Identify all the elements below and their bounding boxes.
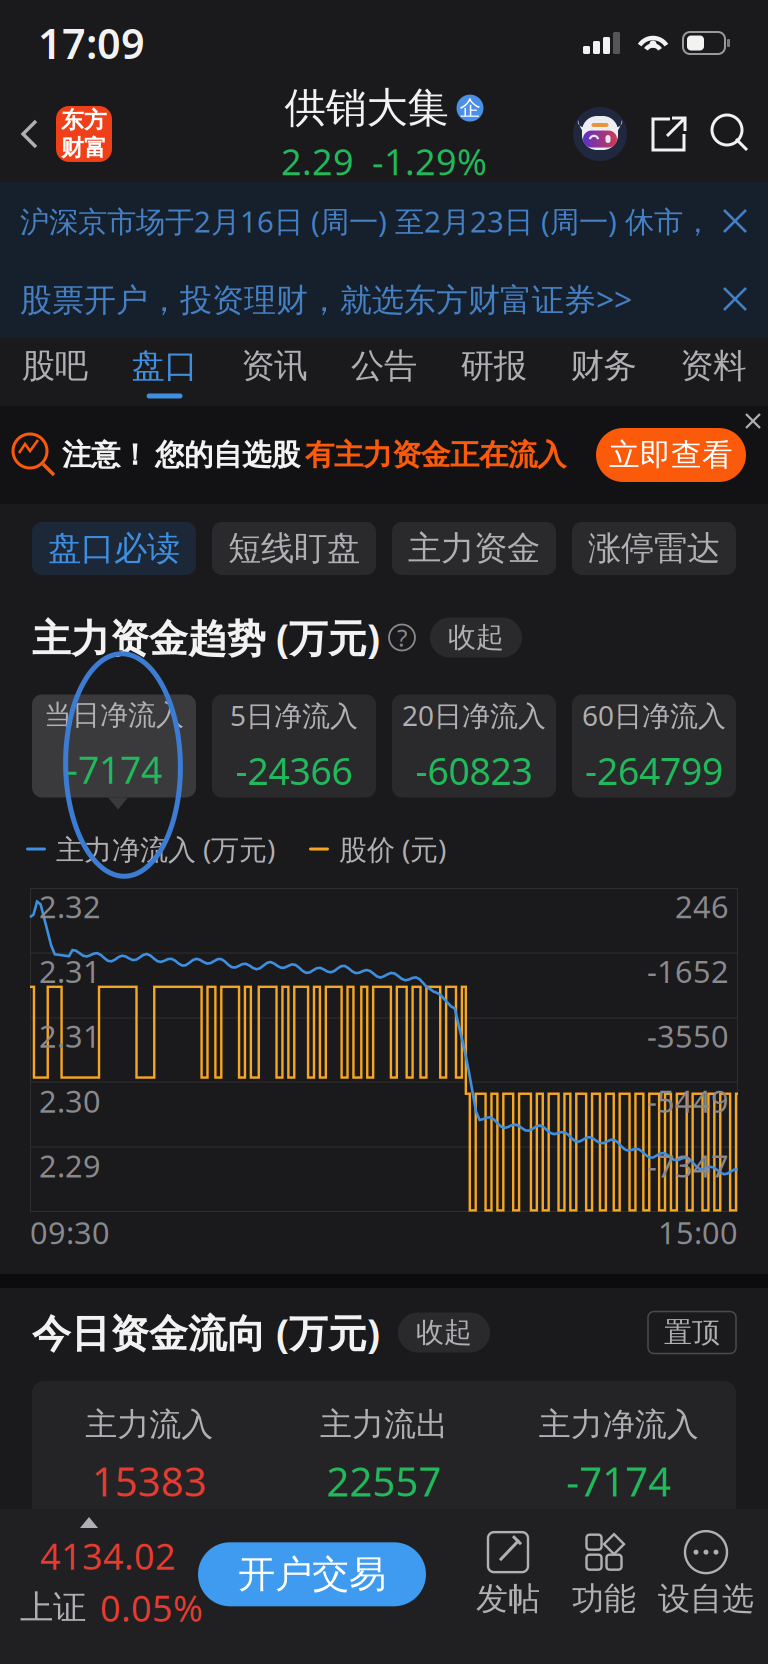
- staticText: -1.29%: [372, 137, 487, 185]
- button[interactable]: 涨停雷达: [572, 522, 736, 575]
- staticText: 收起: [416, 1315, 472, 1350]
- button[interactable]: Back: [0, 96, 112, 172]
- staticText: 股价 (元): [339, 830, 446, 868]
- staticText: 2.31: [39, 951, 101, 991]
- staticText: 股吧: [22, 345, 88, 386]
- staticText: 公告: [351, 345, 417, 386]
- staticText: 设自选: [658, 1579, 754, 1618]
- staticText: 15383: [92, 1454, 207, 1507]
- staticText: 60日净流入: [582, 697, 726, 734]
- staticText: 2.29: [281, 137, 354, 185]
- staticText: 2.32: [39, 886, 101, 927]
- staticText: 主力流入: [85, 1405, 213, 1444]
- staticText: 收起: [448, 620, 504, 655]
- button[interactable]: 当日净流入: [32, 694, 196, 797]
- button[interactable]: 20日净流入: [392, 694, 556, 797]
- button[interactable]: Search: [710, 105, 768, 163]
- staticText: 置顶: [664, 1315, 720, 1350]
- button[interactable]: 沪深京市场于2月16日 (周一) 至2月23日 (周一) 休市，: [0, 182, 768, 260]
- button[interactable]: 4134.02: [0, 1517, 198, 1632]
- staticText: 开户交易: [238, 1551, 386, 1597]
- staticText: 资讯: [241, 345, 307, 386]
- button[interactable]: 短线盯盘: [212, 522, 376, 575]
- staticText: 246: [675, 886, 729, 927]
- button[interactable]: 盘口: [110, 338, 219, 406]
- staticText: 盘口: [132, 345, 198, 386]
- staticText: 17:09: [38, 16, 145, 70]
- staticText: 0.05%: [100, 1584, 203, 1632]
- button[interactable]: 功能: [556, 1530, 652, 1618]
- button[interactable]: 收起: [430, 617, 522, 657]
- button[interactable]: 置顶: [648, 1311, 736, 1353]
- button[interactable]: 股吧: [0, 338, 110, 406]
- staticText: 有主力资金正在流入: [305, 437, 566, 473]
- staticText: 4134.02: [40, 1532, 176, 1580]
- staticText: 20日净流入: [402, 697, 546, 734]
- staticText: 您的自选股: [155, 437, 300, 473]
- staticText: 09:30: [30, 1212, 110, 1253]
- staticText: -264799: [585, 746, 723, 795]
- staticText: 发帖: [476, 1579, 540, 1618]
- staticText: -7174: [66, 744, 162, 794]
- staticText: 研报: [461, 345, 527, 386]
- staticText: 主力净流入: [539, 1405, 699, 1444]
- button[interactable]: Close: [744, 406, 768, 430]
- button[interactable]: 盘口必读: [32, 522, 196, 575]
- staticText: 财务: [570, 345, 636, 386]
- staticText: -60823: [415, 746, 532, 795]
- button[interactable]: 资讯: [219, 338, 329, 406]
- staticText: -5449: [647, 1080, 729, 1121]
- staticText: 企: [459, 95, 480, 121]
- staticText: 沪深京市场于2月16日 (周一) 至2月23日 (周一) 休市，: [20, 201, 712, 240]
- staticText: 2.31: [39, 1016, 101, 1056]
- staticText: 主力资金趋势 (万元): [32, 612, 380, 663]
- button[interactable]: 股票开户，投资理财，就选东方财富证券>>: [0, 260, 768, 338]
- staticText: 上证: [20, 1587, 86, 1628]
- staticText: -1652: [647, 951, 729, 991]
- staticText: 2.29: [39, 1145, 101, 1186]
- staticText: 注意！: [62, 437, 149, 473]
- staticText: 供销大集: [284, 83, 448, 133]
- button[interactable]: 研报: [439, 338, 549, 406]
- button[interactable]: 公告: [329, 338, 439, 406]
- button[interactable]: 5日净流入: [212, 694, 376, 797]
- staticText: -3550: [647, 1016, 729, 1056]
- button[interactable]: 设自选: [652, 1530, 760, 1618]
- staticText: 盘口必读: [48, 528, 180, 569]
- button[interactable]: 资料: [658, 338, 768, 406]
- staticText: 资料: [680, 345, 746, 386]
- staticText: 22557: [326, 1454, 441, 1507]
- staticText: -7347: [647, 1145, 729, 1186]
- staticText: -24366: [235, 746, 352, 795]
- button[interactable]: 60日净流入: [572, 694, 736, 797]
- button[interactable]: 主力资金: [392, 522, 556, 575]
- staticText: 涨停雷达: [588, 528, 720, 569]
- staticText: 财富: [61, 134, 107, 162]
- staticText: -7174: [566, 1454, 671, 1507]
- button[interactable]: 财务: [549, 338, 658, 406]
- staticText: 主力流出: [320, 1405, 448, 1444]
- staticText: 功能: [572, 1579, 636, 1618]
- staticText: 主力净流入 (万元): [56, 830, 275, 868]
- staticText: 2.30: [39, 1080, 101, 1121]
- staticText: 立即查看: [609, 436, 733, 474]
- button[interactable]: 发帖: [460, 1530, 556, 1618]
- button[interactable]: Share: [628, 105, 710, 163]
- staticText: 股票开户，投资理财，就选东方财富证券>>: [20, 278, 632, 320]
- staticText: 主力资金: [408, 528, 540, 569]
- staticText: 今日资金流向 (万元): [32, 1307, 380, 1358]
- staticText: 东方: [61, 106, 107, 134]
- staticText: 5日净流入: [230, 697, 358, 734]
- button[interactable]: AI assistant: [572, 98, 628, 170]
- staticText: ?: [397, 622, 407, 653]
- button[interactable]: 开户交易: [198, 1542, 426, 1606]
- staticText: 当日净流入: [44, 698, 184, 732]
- staticText: 短线盯盘: [228, 528, 360, 569]
- button[interactable]: 注意！: [0, 406, 768, 504]
- staticText: 15:00: [658, 1212, 738, 1253]
- button[interactable]: 收起: [398, 1312, 490, 1352]
